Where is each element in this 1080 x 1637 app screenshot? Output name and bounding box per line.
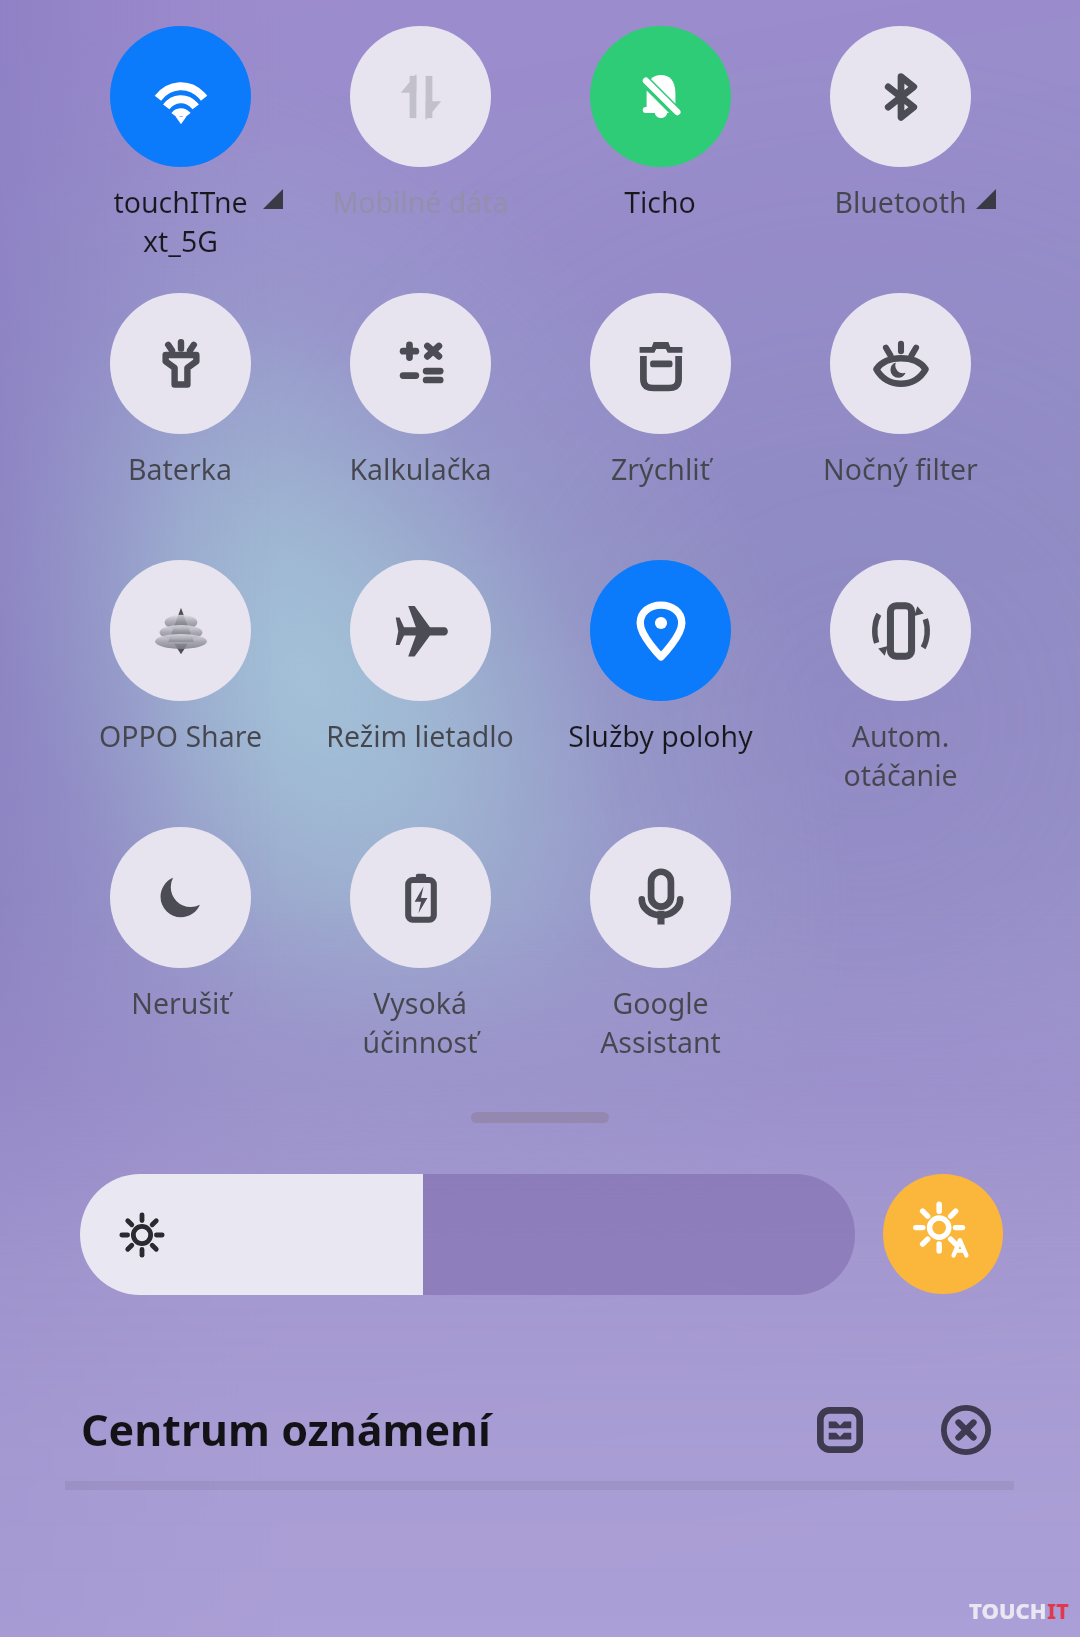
staticText: Baterka (128, 450, 232, 489)
button[interactable]: Služby polohy (540, 560, 780, 803)
staticText: Vysoká účinnosť (362, 984, 478, 1061)
button[interactable]: Baterka (60, 293, 300, 536)
staticText: TOUCH (969, 1595, 1047, 1625)
staticText: Služby polohy (568, 717, 753, 756)
button[interactable]: Vysoká účinnosť (300, 827, 540, 1070)
button[interactable]: Clear all notifications (936, 1400, 996, 1460)
button[interactable]: Bluetooth (780, 26, 1020, 269)
button[interactable]: Notification settings (810, 1400, 870, 1460)
staticText: Nerušiť (131, 984, 230, 1023)
staticText: OPPO Share (99, 717, 262, 756)
staticText: Autom. otáčanie (843, 717, 958, 794)
button[interactable]: Nerušiť (60, 827, 300, 1070)
button[interactable]: Zrýchliť (540, 293, 780, 536)
button[interactable]: Režim lietadlo (300, 560, 540, 803)
staticText: Nočný filter (823, 450, 978, 489)
staticText: Zrýchliť (611, 450, 710, 489)
button[interactable]: Kalkulačka (300, 293, 540, 536)
staticText: Centrum oznámení (81, 1400, 491, 1459)
button[interactable]: touchITne xt_5G (60, 26, 300, 269)
staticText: Kalkulačka (349, 450, 492, 489)
button[interactable]: Google Assistant (540, 827, 780, 1070)
button[interactable]: OPPO Share (60, 560, 300, 803)
staticText: Bluetooth (834, 183, 967, 222)
button[interactable]: Brightness (80, 1174, 855, 1295)
staticText: Režim lietadlo (326, 717, 514, 756)
staticText: touchITne xt_5G (113, 183, 248, 260)
button[interactable]: Auto brightness (883, 1174, 1003, 1294)
staticText: Mobilné dáta (332, 183, 509, 222)
staticText: IT (1047, 1595, 1069, 1625)
button[interactable]: Nočný filter (780, 293, 1020, 536)
staticText: Google Assistant (600, 984, 721, 1061)
button[interactable]: Autom. otáčanie (780, 560, 1020, 803)
button[interactable]: Ticho (540, 26, 780, 269)
button[interactable]: Mobilné dáta (300, 26, 540, 269)
staticText: Ticho (624, 183, 696, 222)
